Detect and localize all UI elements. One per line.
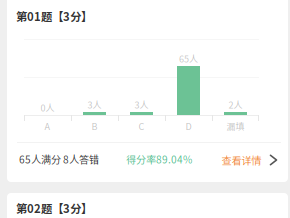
staticText: 2人: [228, 98, 242, 111]
staticText: A: [44, 119, 50, 132]
staticText: 3人: [87, 98, 101, 111]
staticText: 漏填: [226, 119, 244, 132]
staticText: C: [138, 119, 144, 132]
button[interactable]: 第02题【3分】: [16, 200, 92, 216]
staticText: 65人: [179, 52, 198, 65]
staticText: 查看详情: [221, 153, 261, 167]
staticText: 得分率89.04%: [126, 152, 192, 166]
staticText: 0人: [40, 101, 54, 114]
staticText: B: [91, 119, 97, 132]
staticText: 第02题【3分】: [16, 200, 92, 216]
button[interactable]: 第01题【3分】: [16, 8, 92, 24]
staticText: 第01题【3分】: [16, 8, 92, 24]
staticText: 65人满分 8人答错: [19, 152, 99, 166]
staticText: D: [185, 119, 191, 132]
button[interactable]: 查看详情: [0, 0, 290, 218]
staticText: 3人: [134, 98, 148, 111]
